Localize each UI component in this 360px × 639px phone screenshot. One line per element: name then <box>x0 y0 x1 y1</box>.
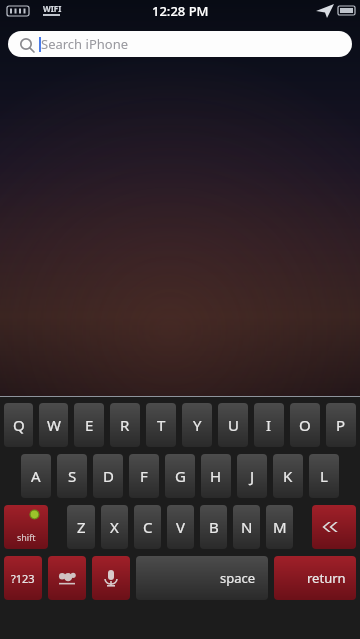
button[interactable]: A <box>21 454 51 498</box>
button[interactable]: B <box>200 505 227 549</box>
button[interactable]: J <box>237 454 267 498</box>
button[interactable]: G <box>165 454 195 498</box>
staticText: D <box>103 466 114 486</box>
button[interactable]: Z <box>67 505 95 549</box>
button[interactable]: I <box>254 403 284 447</box>
staticText: L <box>320 466 328 486</box>
staticText: 12:28 PM <box>152 2 209 20</box>
staticText: S <box>68 466 77 486</box>
button[interactable]: return <box>274 556 356 600</box>
button[interactable]: Voice input <box>92 556 130 600</box>
button[interactable]: C <box>134 505 161 549</box>
button[interactable]: P <box>326 403 356 447</box>
staticText: F <box>140 466 148 486</box>
button[interactable]: Backspace <box>312 505 356 549</box>
button[interactable]: D <box>93 454 123 498</box>
button[interactable]: U <box>218 403 248 447</box>
button[interactable]: V <box>167 505 194 549</box>
button[interactable]: Search iPhone <box>8 31 352 57</box>
button[interactable]: ?123 <box>4 556 42 600</box>
staticText: G <box>175 466 186 486</box>
button[interactable]: S <box>57 454 87 498</box>
staticText: U <box>228 415 239 435</box>
button[interactable]: Shift <box>4 505 48 549</box>
button[interactable]: O <box>290 403 320 447</box>
staticText: ?123 <box>11 571 35 586</box>
staticText: P <box>336 415 346 435</box>
button[interactable]: E <box>74 403 104 447</box>
button[interactable]: Y <box>182 403 212 447</box>
staticText: O <box>299 415 311 435</box>
button[interactable]: T <box>146 403 176 447</box>
button[interactable]: L <box>309 454 339 498</box>
staticText: Y <box>193 415 202 435</box>
staticText: Search iPhone <box>41 35 129 53</box>
staticText: E <box>85 415 94 435</box>
staticText: Z <box>77 517 86 537</box>
staticText: shift <box>17 531 36 543</box>
staticText: B <box>209 517 219 537</box>
staticText: W <box>47 415 61 435</box>
staticText: X <box>110 517 119 537</box>
staticText: WIFI <box>43 3 62 14</box>
button[interactable]: H <box>201 454 231 498</box>
staticText: J <box>250 466 255 486</box>
button[interactable]: N <box>233 505 260 549</box>
staticText: K <box>283 466 293 486</box>
staticText: M <box>273 517 287 537</box>
button[interactable]: Space <box>136 556 268 600</box>
button[interactable]: F <box>129 454 159 498</box>
button[interactable]: Q <box>4 403 33 447</box>
button[interactable]: K <box>273 454 303 498</box>
staticText: Q <box>13 415 25 435</box>
staticText: I <box>266 415 272 435</box>
button[interactable]: R <box>110 403 140 447</box>
staticText: space <box>220 569 256 587</box>
button[interactable]: Change language <box>48 556 86 600</box>
staticText: R <box>120 415 130 435</box>
staticText: H <box>210 466 222 486</box>
button[interactable]: M <box>266 505 293 549</box>
staticText: V <box>176 517 186 537</box>
staticText: T <box>157 415 166 435</box>
staticText: A <box>31 466 41 486</box>
button[interactable]: W <box>39 403 68 447</box>
staticText: C <box>143 517 153 537</box>
staticText: return <box>307 569 346 587</box>
staticText: N <box>241 517 253 537</box>
button[interactable]: X <box>101 505 128 549</box>
